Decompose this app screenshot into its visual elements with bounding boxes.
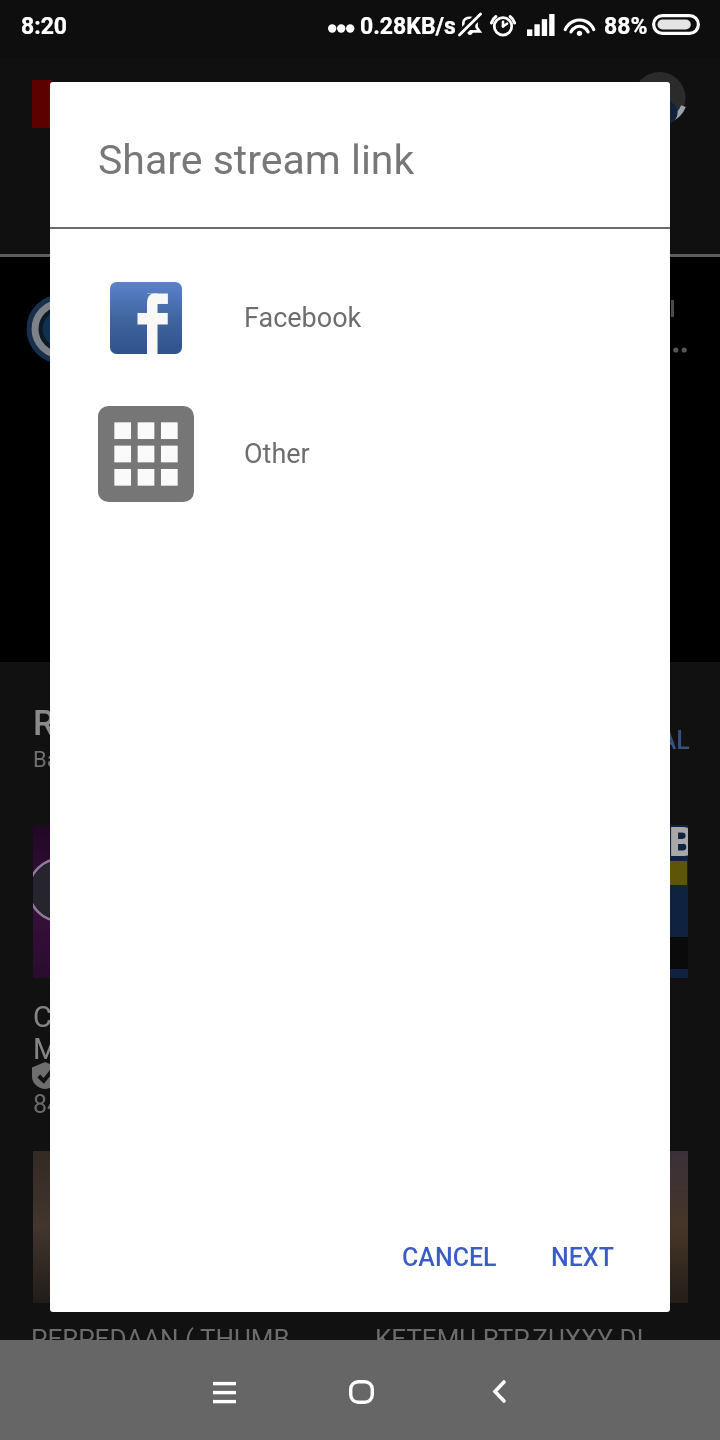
staticText: NEXT (551, 1243, 614, 1272)
button[interactable]: Back (464, 1352, 534, 1428)
staticText: Cara (33, 1000, 93, 1034)
button[interactable]: Recents (190, 1352, 260, 1428)
staticText: Share stream link (98, 136, 415, 184)
staticText: CANCEL (402, 1243, 497, 1272)
staticText: Bagikan (33, 747, 112, 773)
staticText: 0.28KB/s (360, 13, 456, 40)
button[interactable]: Facebook (50, 268, 670, 368)
staticText: Membuat (33, 1032, 157, 1066)
staticText: Facebook (244, 302, 362, 334)
staticText: 88% (604, 13, 648, 40)
staticText: Ramadhan (33, 703, 201, 744)
staticText: PERPEDAAN ( THUMB (31, 1324, 290, 1354)
staticText: 8:20 (21, 13, 68, 40)
staticText: LIHAT SEMUAL (518, 726, 690, 755)
button[interactable]: NEXT (527, 1221, 637, 1293)
button[interactable]: CANCEL (379, 1221, 519, 1293)
staticText: Other (244, 438, 310, 470)
staticText: B (669, 825, 688, 866)
staticText: KETEMU RTP.ZUXXY DI (375, 1324, 644, 1354)
staticText: 84 rb x ditonton (33, 1090, 207, 1119)
button[interactable]: Home (326, 1352, 396, 1428)
button[interactable]: Other (50, 394, 670, 514)
